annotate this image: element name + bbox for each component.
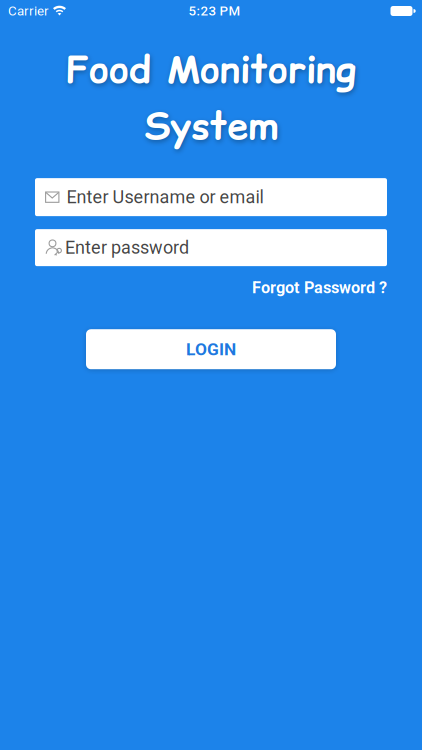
staticText: 5:23 PM [188, 3, 240, 19]
button[interactable]: Forgot Password ? [252, 278, 387, 297]
button[interactable]: Enter Username or email [35, 178, 387, 216]
staticText: Carrier [8, 3, 49, 19]
staticText: Food Monitoring [66, 43, 356, 95]
staticText: System [144, 100, 277, 152]
staticText: Forgot Password ? [252, 278, 387, 297]
staticText: LOGIN [186, 339, 236, 359]
button[interactable]: LOGIN [86, 329, 336, 369]
staticText: Enter Username or email [66, 187, 263, 208]
staticText: Enter password [65, 237, 189, 258]
button[interactable]: Enter password [35, 229, 387, 266]
